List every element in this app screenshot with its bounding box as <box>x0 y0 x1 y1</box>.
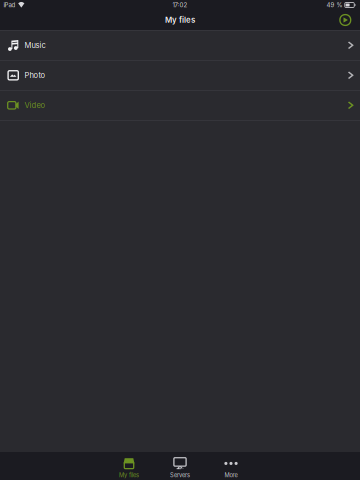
staticText: 49 % <box>327 1 343 9</box>
staticText: Video <box>25 101 46 110</box>
staticText: My files <box>165 15 195 25</box>
button[interactable]: Servers <box>154 452 205 480</box>
button[interactable]: Photo <box>0 61 360 91</box>
button[interactable]: My files <box>103 452 154 480</box>
button[interactable]: Play <box>336 11 354 29</box>
button[interactable]: Music <box>0 31 360 61</box>
staticText: Servers <box>170 472 190 478</box>
staticText: 17:02 <box>172 1 187 9</box>
staticText: Music <box>25 41 46 50</box>
staticText: More <box>224 472 237 478</box>
staticText: Photo <box>25 71 46 80</box>
button[interactable]: More <box>205 452 256 480</box>
staticText: My files <box>119 472 139 478</box>
staticText: iPad <box>4 1 16 9</box>
button[interactable]: Video <box>0 91 360 121</box>
